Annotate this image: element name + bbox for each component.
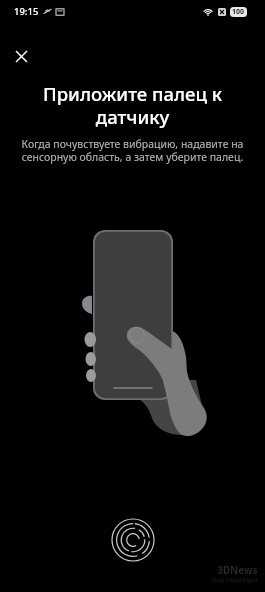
staticText: 19:15 <box>14 5 39 18</box>
staticText: 100 <box>232 7 245 17</box>
staticText: 3DNews <box>217 563 258 577</box>
button[interactable]: Fingerprint sensor <box>111 518 155 562</box>
staticText: Daily Digital Digest <box>213 577 258 584</box>
button[interactable]: Close <box>5 40 37 72</box>
staticText: Когда почувствуете вибрацию, надавите на… <box>14 137 251 164</box>
staticText: Приложите палец к датчику <box>24 81 241 129</box>
